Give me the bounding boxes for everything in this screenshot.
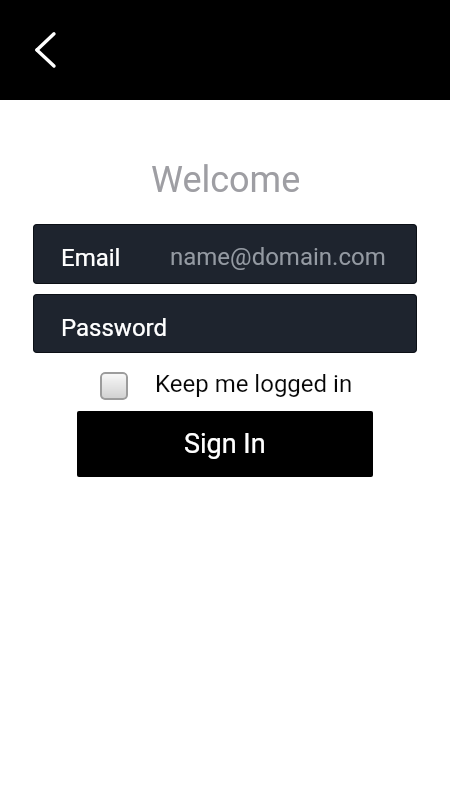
- staticText: Sign In: [184, 428, 266, 460]
- staticText: name@domain.com: [170, 243, 386, 271]
- button[interactable]: Password: [33, 294, 417, 353]
- staticText: Keep me logged in: [155, 370, 353, 398]
- button[interactable]: Email: [33, 224, 417, 284]
- staticText: Email: [61, 244, 121, 272]
- button[interactable]: Back: [16, 22, 72, 78]
- button[interactable]: Sign In: [77, 411, 373, 477]
- staticText: Password: [61, 314, 168, 342]
- button[interactable]: Keep me logged in: [100, 370, 352, 400]
- staticText: Welcome: [151, 159, 301, 201]
